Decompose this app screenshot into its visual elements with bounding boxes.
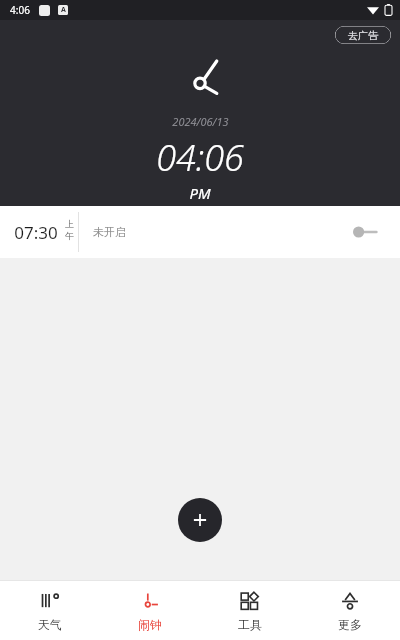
- button[interactable]: Add alarm: [178, 498, 222, 542]
- staticText: 04:06: [156, 133, 244, 182]
- button[interactable]: 07:30: [0, 206, 400, 258]
- button[interactable]: 闹钟: [100, 581, 200, 640]
- button[interactable]: 天气: [0, 581, 100, 640]
- staticText: A: [61, 5, 66, 15]
- staticText: 4:06: [10, 3, 30, 17]
- button[interactable]: 更多: [300, 581, 400, 640]
- staticText: 工具: [238, 617, 262, 632]
- button[interactable]: 去广告: [334, 25, 392, 45]
- button[interactable]: Toggle alarm: [352, 218, 386, 246]
- button[interactable]: 工具: [200, 581, 300, 640]
- staticText: 更多: [338, 617, 362, 632]
- staticText: 上午: [61, 218, 78, 242]
- staticText: 2024/06/13: [172, 114, 229, 129]
- staticText: 闹钟: [138, 617, 162, 632]
- staticText: 天气: [38, 617, 62, 632]
- staticText: 去广告: [348, 29, 378, 42]
- staticText: PM: [189, 183, 211, 203]
- staticText: 07:30: [14, 221, 58, 244]
- staticText: 未开启: [93, 225, 126, 239]
